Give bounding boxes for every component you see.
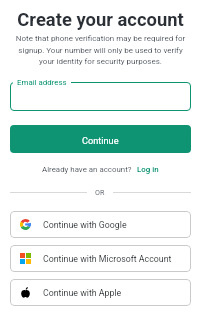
other: Microsoft: [20, 253, 31, 264]
staticText: Already have an account?: [42, 165, 132, 174]
staticText: Create your account: [10, 9, 191, 31]
staticText: Continue with Microsoft Account: [43, 254, 172, 264]
staticText: Continue with Apple: [43, 288, 122, 298]
staticText: OR: [95, 188, 105, 196]
other: Apple: [20, 287, 31, 298]
button[interactable]: Continue: [10, 125, 191, 153]
button[interactable]: Microsoft: [10, 245, 191, 272]
other: Google: [20, 219, 31, 230]
button[interactable]: [10, 82, 191, 111]
button[interactable]: Log in: [137, 165, 159, 174]
button[interactable]: Apple: [10, 279, 191, 306]
staticText: Continue with Google: [43, 220, 127, 230]
staticText: Email address: [17, 78, 67, 87]
staticText: Note that phone verification may be requ…: [10, 34, 191, 66]
staticText: Continue: [82, 135, 119, 146]
button[interactable]: Google: [10, 211, 191, 238]
staticText: Log in: [137, 165, 159, 174]
